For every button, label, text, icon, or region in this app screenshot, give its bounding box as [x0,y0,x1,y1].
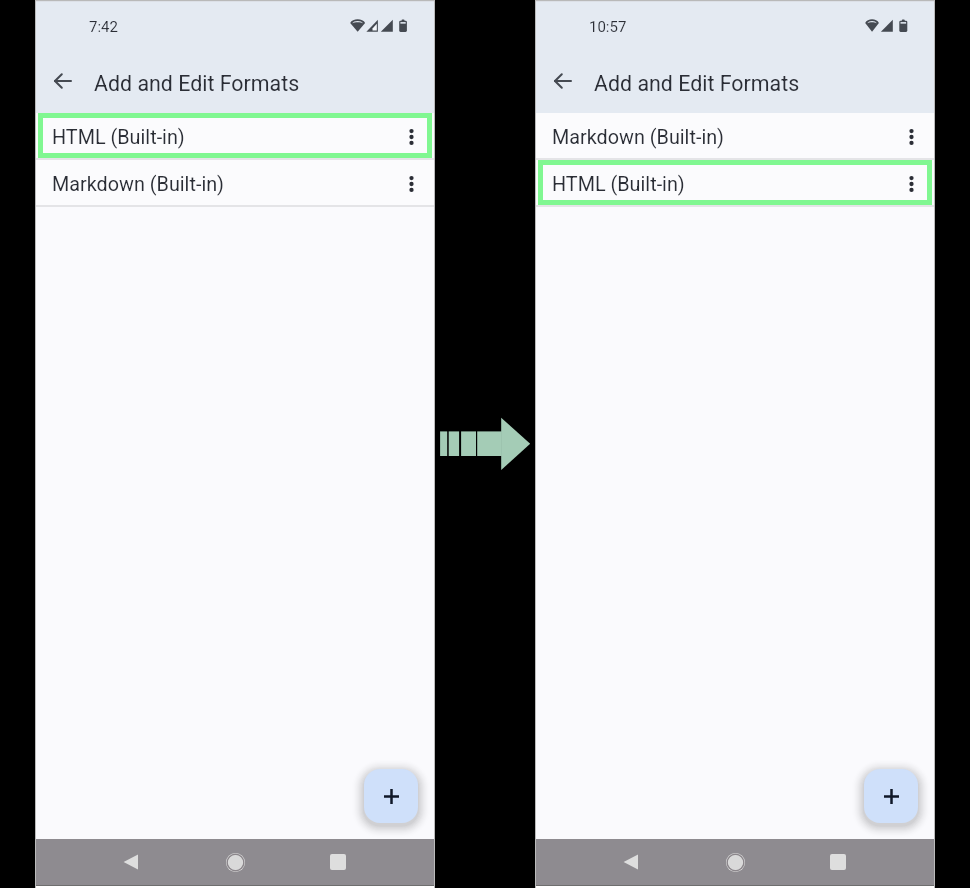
button[interactable]: Back [610,842,650,882]
staticText: Add and Edit Formats [594,71,800,96]
button[interactable]: Back [43,61,83,101]
staticText: 7:42 [89,18,118,36]
button[interactable]: Markdown (Built-in) [535,113,935,160]
button[interactable]: Home [715,842,755,882]
button[interactable]: Recent apps [318,842,358,882]
button[interactable]: Markdown (Built-in) [35,160,435,207]
button[interactable]: Recent apps [818,842,858,882]
button[interactable]: Add format [864,769,918,823]
staticText: Add and Edit Formats [94,71,300,96]
button[interactable]: Back [110,842,150,882]
staticText: HTML (Built-in) [552,173,893,196]
button[interactable]: More options [393,166,429,202]
staticText: Markdown (Built-in) [52,173,393,196]
staticText: HTML (Built-in) [52,126,393,149]
staticText: Markdown (Built-in) [552,126,893,149]
button[interactable]: More options [893,119,929,155]
button[interactable]: Add format [364,769,418,823]
button[interactable]: More options [393,119,429,155]
button[interactable]: HTML (Built-in) [535,160,935,207]
button[interactable]: More options [893,166,929,202]
button[interactable]: Home [215,842,255,882]
button[interactable]: Back [543,61,583,101]
staticText: 10:57 [589,18,627,36]
button[interactable]: HTML (Built-in) [35,113,435,160]
